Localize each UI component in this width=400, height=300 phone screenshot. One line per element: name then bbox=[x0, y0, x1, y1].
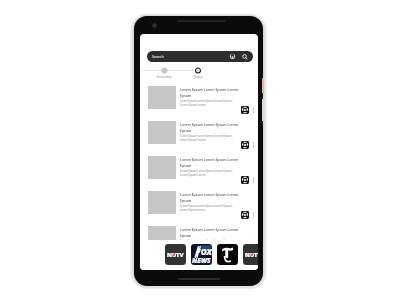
button[interactable]: Lorem Epsum Lorem Epsum Lorem Epsum bbox=[140, 83, 258, 118]
button[interactable]: Lorem Epsum Lorem Epsum Lorem Epsum bbox=[140, 223, 258, 258]
staticText: Yesterday bbox=[153, 74, 175, 78]
button[interactable]: Source bbox=[241, 106, 249, 114]
staticText: Today bbox=[189, 74, 207, 78]
staticText: Lorem Epsum Lorem Epsum Lorem Epsum, Lor… bbox=[180, 99, 240, 107]
staticText: Lorem Epsum Lorem Epsum Lorem Epsum, Lor… bbox=[180, 204, 240, 212]
staticText: Lorem Epsum Lorem Epsum Lorem Epsum bbox=[180, 192, 240, 203]
staticText: Lorem Epsum Lorem Epsum Lorem Epsum, Lor… bbox=[180, 239, 240, 247]
button[interactable]: Lorem Epsum Lorem Epsum Lorem Epsum bbox=[140, 188, 258, 223]
button[interactable]: More options bbox=[252, 106, 255, 114]
staticText: NEWS bbox=[192, 256, 211, 264]
button[interactable]: Source bbox=[241, 211, 249, 219]
staticText: FOX bbox=[196, 246, 212, 257]
button[interactable]: More options bbox=[252, 211, 255, 219]
button[interactable]: Source bbox=[241, 141, 249, 149]
button[interactable]: Lorem Epsum Lorem Epsum Lorem Epsum bbox=[140, 153, 258, 188]
staticText: Lorem Epsum Lorem Epsum Lorem Epsum, Lor… bbox=[180, 134, 240, 142]
staticText: NDTV bbox=[167, 251, 184, 259]
staticText: Lorem Epsum Lorem Epsum Lorem Epsum bbox=[180, 122, 240, 133]
button[interactable]: NDTV bbox=[243, 244, 258, 265]
button[interactable]: Lorem Epsum Lorem Epsum Lorem Epsum bbox=[140, 118, 258, 153]
button[interactable]: Search bbox=[147, 51, 253, 62]
button[interactable]: More options bbox=[252, 246, 255, 254]
button[interactable]: NDTV bbox=[165, 244, 186, 265]
button[interactable]: More options bbox=[252, 141, 255, 149]
other: Search bbox=[242, 54, 248, 60]
button[interactable]: More options bbox=[252, 176, 255, 184]
button[interactable]: The New York Times bbox=[217, 244, 238, 265]
staticText: Lorem Epsum Lorem Epsum Lorem Epsum bbox=[180, 157, 240, 168]
staticText: Lorem Epsum Lorem Epsum Lorem Epsum bbox=[180, 87, 240, 98]
staticText: Search bbox=[152, 54, 164, 59]
staticText: Lorem Epsum Lorem Epsum Lorem Epsum, Lor… bbox=[180, 169, 240, 177]
button[interactable]: Source bbox=[241, 246, 249, 254]
button[interactable]: Fox News bbox=[191, 244, 212, 265]
staticText: NDTV bbox=[245, 251, 258, 259]
staticText: Lorem Epsum Lorem Epsum Lorem Epsum bbox=[180, 227, 240, 238]
button[interactable]: Source bbox=[241, 176, 249, 184]
other: Google Lens bbox=[230, 54, 235, 59]
